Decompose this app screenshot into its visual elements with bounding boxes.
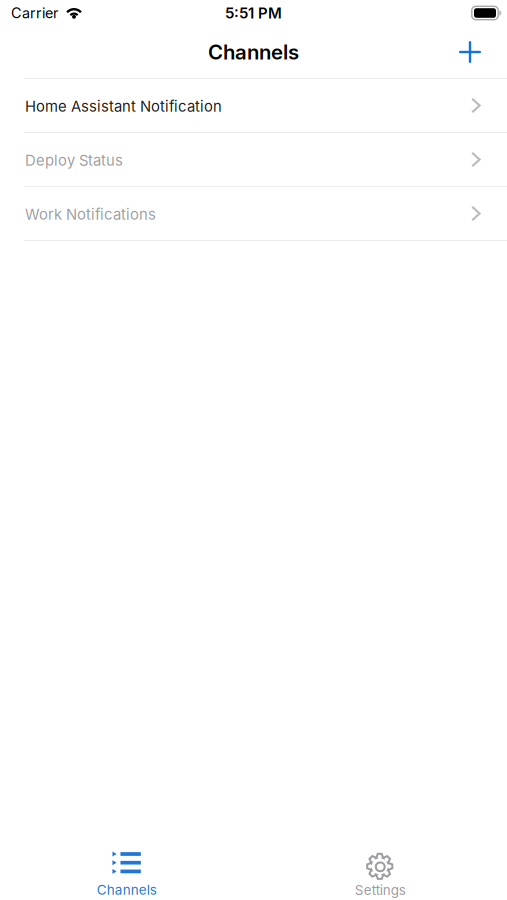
- button[interactable]: Channels: [0, 844, 253, 900]
- button[interactable]: Deploy Status: [0, 133, 507, 186]
- staticText: Work Notifications: [25, 205, 156, 223]
- staticText: 5:51 PM: [225, 4, 282, 22]
- button[interactable]: Add channel: [448, 31, 492, 73]
- button[interactable]: Settings: [253, 844, 507, 900]
- button[interactable]: Work Notifications: [0, 187, 507, 240]
- staticText: Deploy Status: [25, 151, 123, 169]
- staticText: Channels: [97, 882, 157, 898]
- staticText: Channels: [208, 40, 299, 64]
- staticText: Home Assistant Notification: [25, 97, 222, 115]
- staticText: Carrier: [11, 4, 58, 22]
- button[interactable]: Home Assistant Notification: [0, 79, 507, 132]
- staticText: Settings: [355, 882, 406, 898]
